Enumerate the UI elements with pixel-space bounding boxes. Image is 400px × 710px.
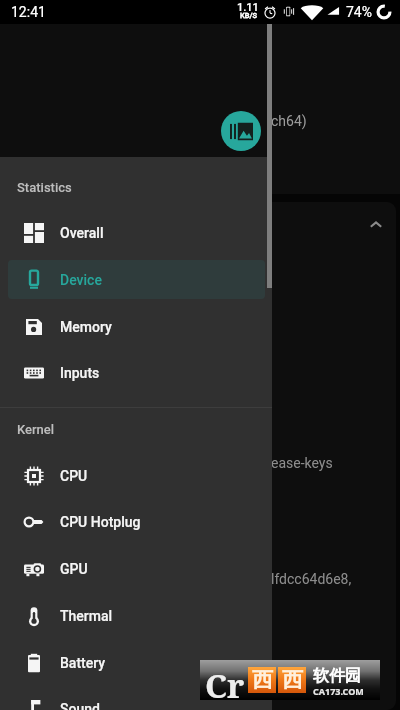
staticText: GPU xyxy=(60,561,88,577)
button[interactable]: Gallery xyxy=(221,111,261,151)
staticText: Memory xyxy=(60,319,112,335)
staticText: ease-keys xyxy=(271,455,333,471)
staticText: Thermal xyxy=(60,608,113,624)
button[interactable]: Collapse xyxy=(364,213,388,237)
button[interactable]: CPU xyxy=(8,456,265,495)
button[interactable]: Battery xyxy=(8,643,265,682)
staticText: CPU xyxy=(60,468,88,484)
button[interactable]: Overall xyxy=(8,213,265,252)
staticText: 西 xyxy=(252,667,273,693)
staticText: 软件园 xyxy=(313,666,361,686)
staticText: Sound xyxy=(60,701,100,710)
staticText: lfdcc64d6e8, xyxy=(271,571,352,587)
staticText: Statistics xyxy=(17,180,72,195)
button[interactable]: GPU xyxy=(8,549,265,588)
button[interactable]: Inputs xyxy=(8,353,265,392)
staticText: Device xyxy=(60,272,102,288)
button[interactable]: Device xyxy=(8,260,265,299)
staticText: Inputs xyxy=(60,365,100,381)
staticText: Overall xyxy=(60,225,104,241)
button[interactable]: Thermal xyxy=(8,596,265,635)
staticText: Cr xyxy=(205,663,245,703)
staticText: 12:41 xyxy=(11,4,46,20)
button[interactable]: Memory xyxy=(8,307,265,346)
button[interactable]: Sound xyxy=(8,689,265,710)
staticText: CA173.COM xyxy=(313,685,364,697)
staticText: Kernel xyxy=(17,422,55,437)
staticText: ch64) xyxy=(271,113,307,129)
button[interactable]: CPU Hotplug xyxy=(8,502,265,541)
staticText: CPU Hotplug xyxy=(60,514,141,530)
staticText: Battery xyxy=(60,655,106,671)
staticText: 74% xyxy=(346,4,372,20)
staticText: KB/S xyxy=(240,11,257,20)
staticText: 西 xyxy=(282,667,303,693)
staticText: 1.11 xyxy=(237,1,259,14)
